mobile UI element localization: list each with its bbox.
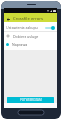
button[interactable]: Naprawa	[4, 40, 57, 48]
button[interactable]: Toggle	[44, 24, 55, 31]
staticText: Crossfile errors	[13, 16, 43, 22]
staticText: Naprawa	[12, 42, 28, 47]
button[interactable]: POTWIERDZAM	[7, 97, 54, 103]
button[interactable]: Add	[4, 32, 57, 40]
staticText: POTWIERDZAM	[20, 98, 42, 102]
button[interactable]: Ustawienia zakupu	[4, 22, 57, 31]
other: Back	[7, 18, 10, 21]
staticText: Ustawienia zakupu	[6, 25, 38, 30]
staticText: Dobierz usluge	[13, 34, 39, 39]
other: Home	[18, 110, 44, 115]
button[interactable]: Back	[4, 13, 57, 22]
other: Add	[6, 34, 10, 38]
